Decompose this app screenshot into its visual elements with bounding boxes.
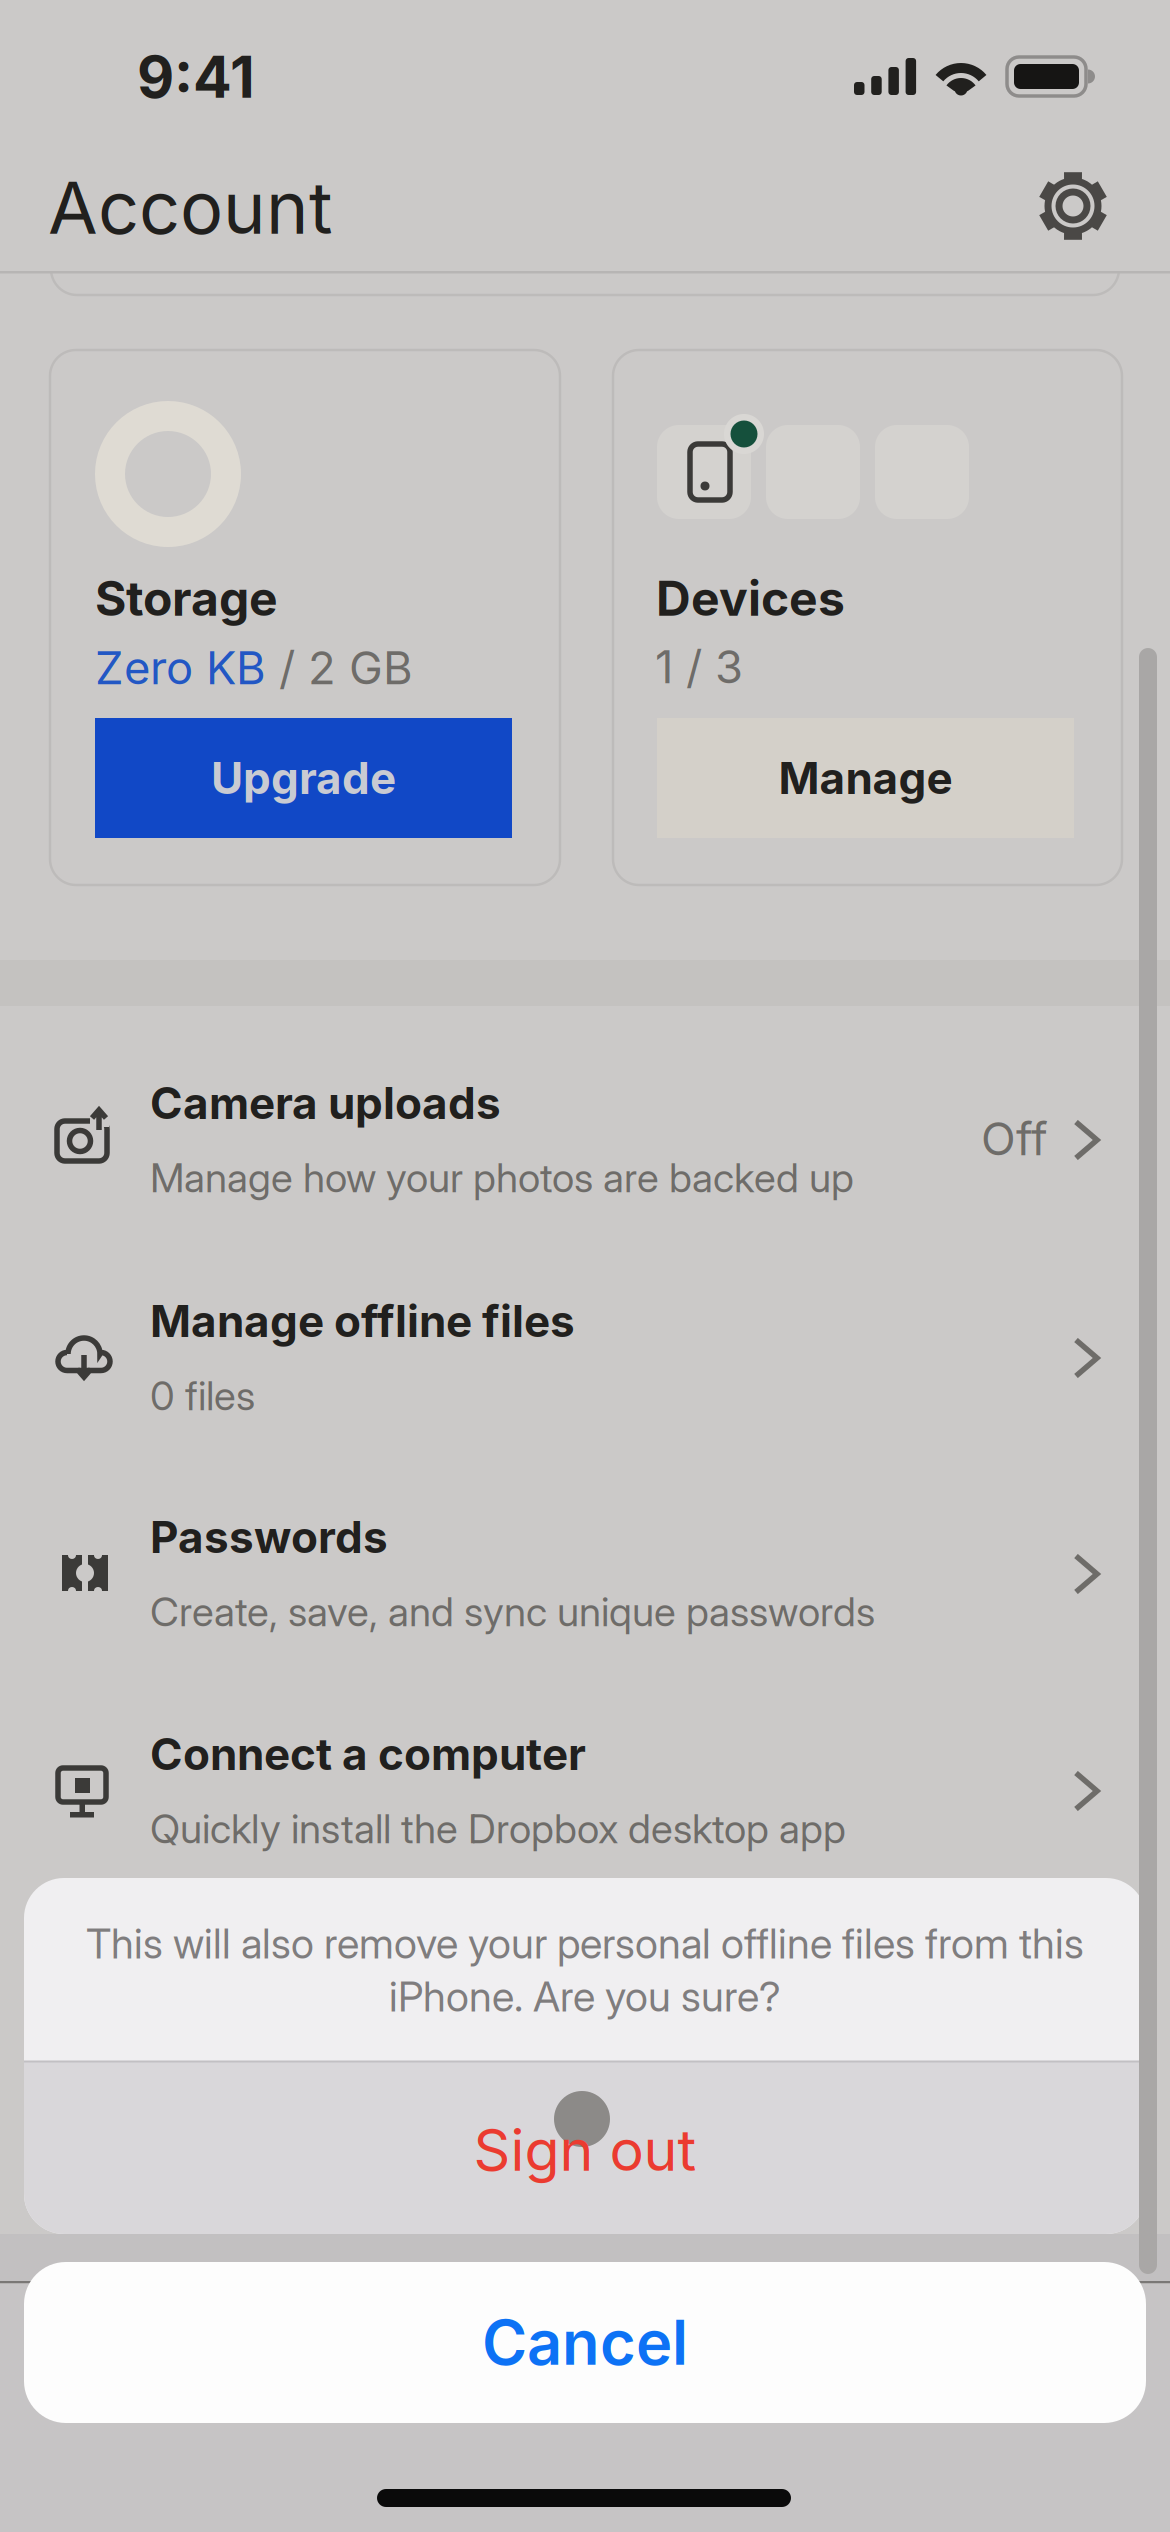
- staticText: / 2 GB: [266, 641, 413, 694]
- staticText: Storage: [95, 570, 278, 627]
- staticText: Camera uploads: [150, 1077, 501, 1129]
- staticText: Off: [981, 1112, 1048, 1165]
- staticText: Passwords: [150, 1511, 388, 1563]
- button[interactable]: Passwords: [0, 1511, 1170, 1728]
- staticText: Manage: [778, 752, 952, 804]
- button[interactable]: Sign out: [24, 2062, 1146, 2234]
- staticText: Connect a computer: [150, 1728, 586, 1780]
- staticText: Quickly install the Dropbox desktop app: [150, 1805, 846, 1852]
- staticText: 9:41: [137, 43, 255, 111]
- staticText: Upgrade: [211, 752, 396, 804]
- staticText: Cancel: [482, 2306, 688, 2379]
- staticText: 0 files: [150, 1372, 255, 1419]
- button[interactable]: Settings: [1041, 174, 1105, 238]
- staticText: 1 / 3: [655, 640, 743, 693]
- staticText: iPhone. Are you sure?: [389, 1972, 781, 2021]
- staticText: Devices: [656, 570, 845, 627]
- staticText: Zero KB: [95, 641, 266, 694]
- button[interactable]: Upgrade: [95, 718, 512, 838]
- staticText: Create, save, and sync unique passwords: [150, 1588, 875, 1635]
- staticText: Account: [48, 165, 333, 250]
- button[interactable]: Connect a computer: [0, 1728, 1170, 1945]
- staticText: Manage offline files: [150, 1295, 575, 1347]
- button[interactable]: Cancel: [24, 2262, 1146, 2423]
- button[interactable]: Camera uploads: [0, 1077, 1170, 1294]
- button[interactable]: Manage: [657, 718, 1074, 838]
- button[interactable]: Manage offline files: [0, 1295, 1170, 1512]
- staticText: This will also remove your personal offl…: [86, 1919, 1084, 1968]
- staticText: Sign out: [473, 2116, 696, 2184]
- staticText: Manage how your photos are backed up: [150, 1154, 854, 1201]
